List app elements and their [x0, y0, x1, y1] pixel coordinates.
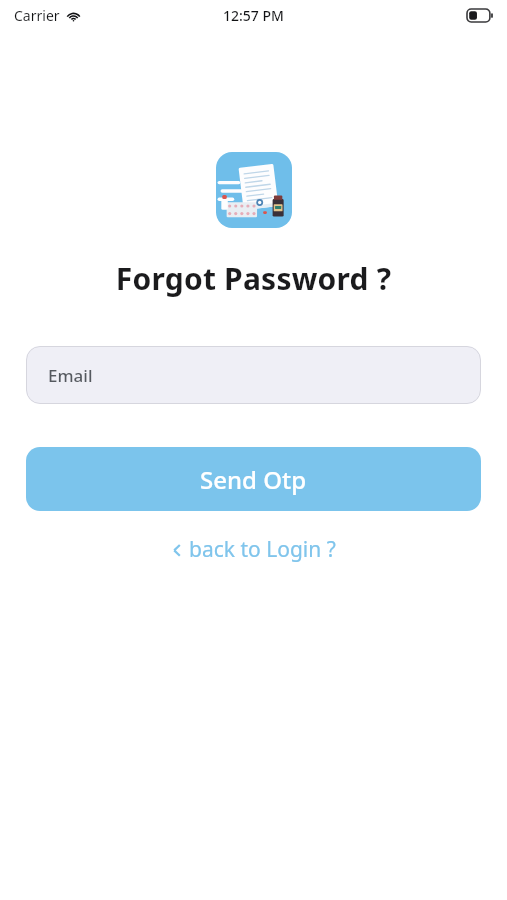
- staticText: 12:57 PM: [223, 6, 284, 25]
- staticText: Send Otp: [200, 463, 307, 496]
- other: App logo: [216, 152, 292, 228]
- staticText: back to Login ?: [189, 535, 336, 564]
- staticText: Forgot Password ?: [0, 258, 507, 299]
- button[interactable]: back to Login ?: [162, 529, 346, 570]
- staticText: Email: [48, 364, 93, 387]
- button[interactable]: Email: [26, 346, 481, 404]
- button[interactable]: Send Otp: [26, 447, 481, 511]
- staticText: Carrier: [14, 6, 60, 25]
